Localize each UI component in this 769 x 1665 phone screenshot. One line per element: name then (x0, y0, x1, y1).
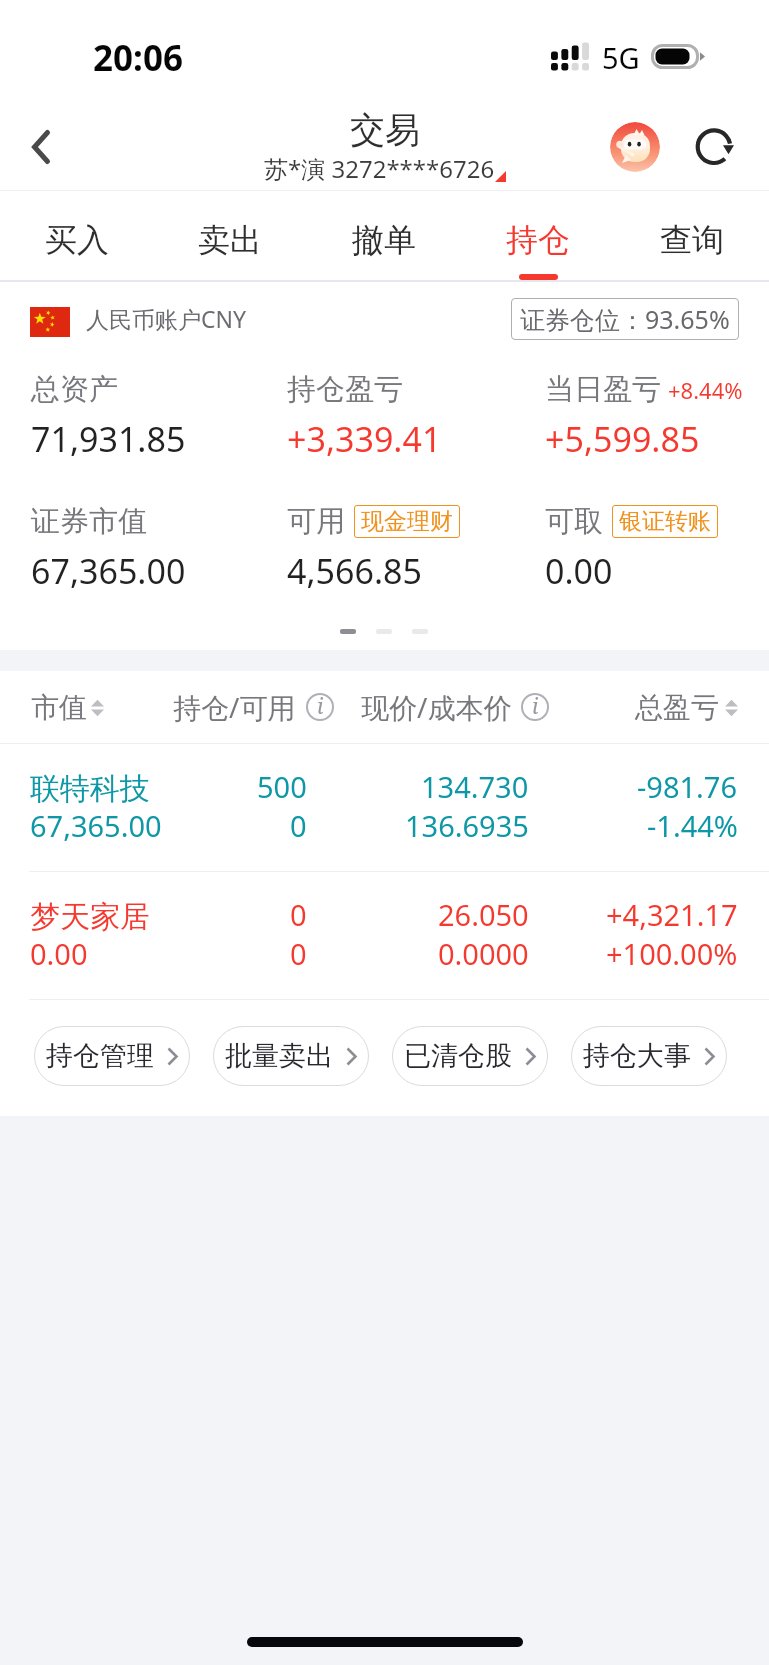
staticText: 4,566.85 (287, 548, 422, 594)
staticText: 批量卖出 (225, 1039, 333, 1073)
staticText: 现金理财 (361, 507, 453, 536)
button[interactable]: Refresh (676, 95, 752, 191)
staticText: 持仓 (506, 220, 570, 260)
staticText: 持仓/可用 (173, 688, 296, 726)
staticText: i (532, 692, 539, 720)
staticText: 现价/成本价 (361, 688, 512, 726)
staticText: 0 (290, 934, 307, 973)
staticText: 0.00 (545, 548, 613, 594)
staticText: +5,599.85 (545, 416, 700, 462)
staticText: 总盈亏 (635, 690, 719, 725)
staticText: +8.44% (668, 375, 743, 405)
button[interactable]: 持仓 (461, 191, 615, 280)
staticText: 查询 (660, 220, 724, 260)
staticText: 136.6935 (405, 806, 529, 845)
staticText: 联特科技 (30, 770, 150, 808)
button[interactable]: 查询 (615, 191, 769, 280)
staticText: -981.76 (637, 767, 738, 806)
staticText: 持仓大事 (583, 1039, 691, 1073)
staticText: 银证转账 (619, 507, 711, 536)
button[interactable]: 梦天家居 (0, 872, 769, 999)
staticText: 71,931.85 (31, 416, 186, 462)
staticText: 0 (290, 806, 307, 845)
staticText: 67,365.00 (30, 806, 162, 845)
button[interactable]: Back (0, 95, 76, 191)
staticText: 0.0000 (438, 934, 529, 973)
staticText: 市值 (31, 690, 87, 725)
button[interactable]: 持仓管理 (34, 1026, 190, 1086)
staticText: +3,339.41 (287, 416, 442, 462)
button[interactable]: 联特科技 (0, 744, 769, 871)
staticText: 人民币账户CNY (86, 303, 247, 334)
staticText: 总资产 (31, 371, 118, 408)
button[interactable]: 银证转账 (619, 507, 711, 536)
staticText: 梦天家居 (30, 898, 150, 936)
staticText: 可取 (545, 503, 603, 540)
button[interactable]: 现金理财 (361, 507, 453, 536)
staticText: 当日盈亏 (545, 371, 661, 408)
button[interactable]: 持仓大事 (571, 1026, 727, 1086)
button[interactable]: 买入 (0, 191, 153, 280)
button[interactable]: 证券仓位：93.65% (511, 298, 739, 340)
staticText: 撤单 (352, 220, 416, 260)
staticText: 证券市值 (31, 503, 147, 540)
staticText: 500 (257, 767, 307, 806)
button[interactable]: 已清仓股 (392, 1026, 548, 1086)
staticText: +100.00% (606, 934, 738, 973)
staticText: 苏*演 3272****6726 (264, 152, 495, 185)
staticText: 134.730 (421, 767, 529, 806)
staticText: 20:06 (93, 34, 183, 82)
staticText: 持仓管理 (46, 1039, 154, 1073)
staticText: 已清仓股 (404, 1039, 512, 1073)
button[interactable]: 批量卖出 (213, 1026, 369, 1086)
staticText: 67,365.00 (31, 548, 186, 594)
button[interactable]: Profile (610, 122, 660, 172)
staticText: 5G (602, 38, 640, 77)
staticText: 0.00 (30, 934, 88, 973)
staticText: 可用 (287, 503, 345, 540)
staticText: 交易 (350, 108, 420, 152)
staticText: -1.44% (647, 806, 738, 845)
staticText: 0 (290, 895, 307, 934)
staticText: 持仓盈亏 (287, 371, 403, 408)
button[interactable]: 卖出 (153, 191, 307, 280)
staticText: 证券仓位：93.65% (520, 302, 730, 336)
staticText: 26.050 (438, 895, 529, 934)
button[interactable]: 撤单 (307, 191, 461, 280)
staticText: +4,321.17 (606, 895, 738, 934)
staticText: 买入 (45, 220, 109, 260)
staticText: 卖出 (198, 220, 262, 260)
staticText: i (317, 692, 324, 720)
